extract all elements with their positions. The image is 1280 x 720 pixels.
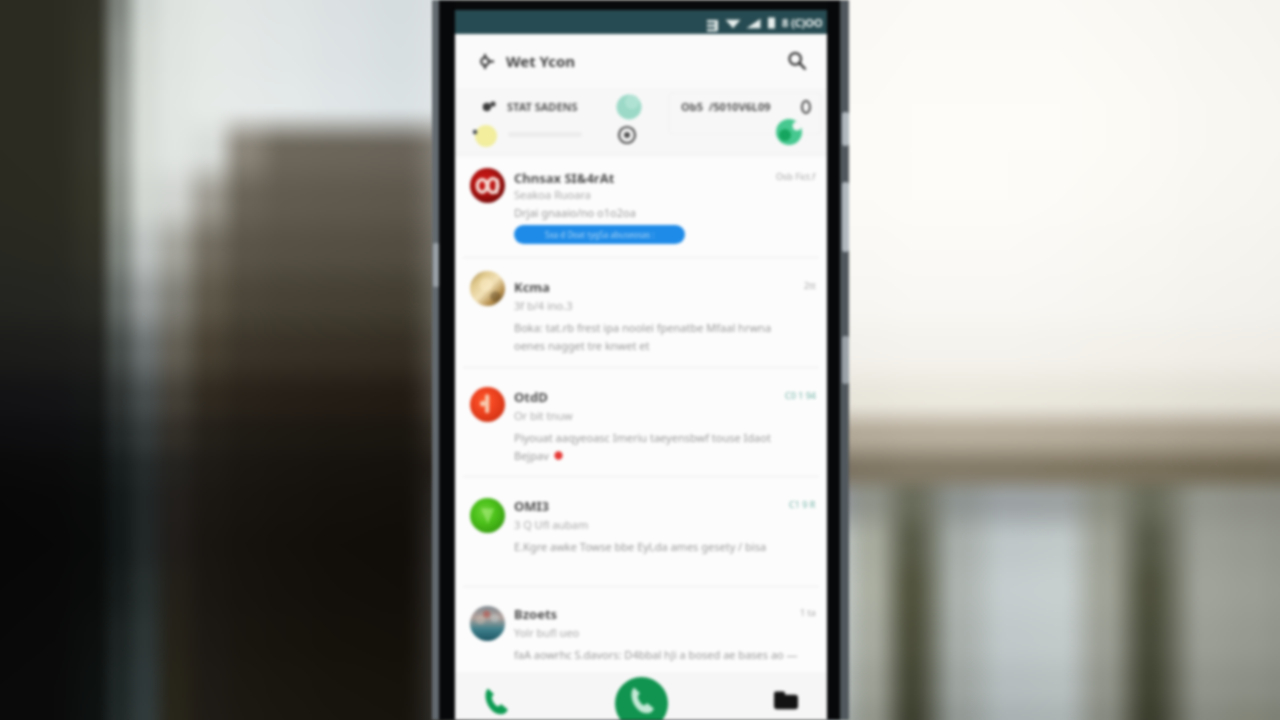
staticText: Osb Fict.f <box>776 170 816 182</box>
staticText: OMI3 <box>514 497 550 515</box>
staticText: Boka: tat.rb frest ipa noolei fpenatbe M… <box>514 320 772 335</box>
button[interactable]: Kcma <box>455 258 827 368</box>
staticText: Or bit tnuw <box>514 408 573 423</box>
staticText: 3 Q Ufl aubam <box>514 517 589 532</box>
staticText: Bzoets <box>514 605 558 623</box>
staticText: C0 1 94 <box>785 389 816 401</box>
staticText: faA aowrhc S.davors: D4bbal hJi a bosed … <box>514 647 798 662</box>
button[interactable]: Search <box>781 45 813 77</box>
staticText: 1 ta <box>800 606 816 618</box>
button[interactable]: OMI3 <box>455 477 827 587</box>
staticText: Drjai gnaaio/no o1o2oa <box>514 205 636 220</box>
staticText: oenes nagget tre knwet et <box>514 338 650 353</box>
staticText: OtdD <box>514 388 548 406</box>
staticText: Seakoa Ruoara <box>514 187 591 202</box>
staticText: E.Kgre awke Towse bbe Eyl,da ames gesety… <box>514 539 767 554</box>
button[interactable]: Chnsax SI&4rAt <box>455 157 827 258</box>
button[interactable]: Bzoets <box>455 587 827 720</box>
button[interactable]: Archived <box>769 683 803 717</box>
button[interactable]: Sxa d Doat tyg5a abuseosas : <box>514 225 685 244</box>
button[interactable]: New call <box>615 677 668 720</box>
staticText: Wet Ycon <box>506 51 576 71</box>
staticText: Bejpav <box>514 448 549 463</box>
staticText: C1 9 R <box>789 498 816 510</box>
staticText: Piyouat aaqyeoasc Imeriu taeyensbwf tous… <box>514 430 771 445</box>
staticText: 2tt <box>804 279 816 291</box>
staticText: Kcma <box>514 278 550 296</box>
staticText: Sxa d Doat tyg5a abuseosas : <box>545 229 655 240</box>
staticText: Chnsax SI&4rAt <box>514 169 615 187</box>
staticText: STAT SADENS <box>507 99 578 114</box>
button[interactable]: Menu <box>471 46 501 76</box>
staticText: Ob5 /5010V6L09 <box>681 99 771 114</box>
button[interactable]: OtdD <box>455 368 827 477</box>
button[interactable]: Calls <box>477 683 513 719</box>
staticText: 3f b/4 ino.3 <box>514 298 573 313</box>
staticText: 8 (C)OO <box>782 15 823 30</box>
staticText: Yolr bufl ueo <box>514 625 580 640</box>
